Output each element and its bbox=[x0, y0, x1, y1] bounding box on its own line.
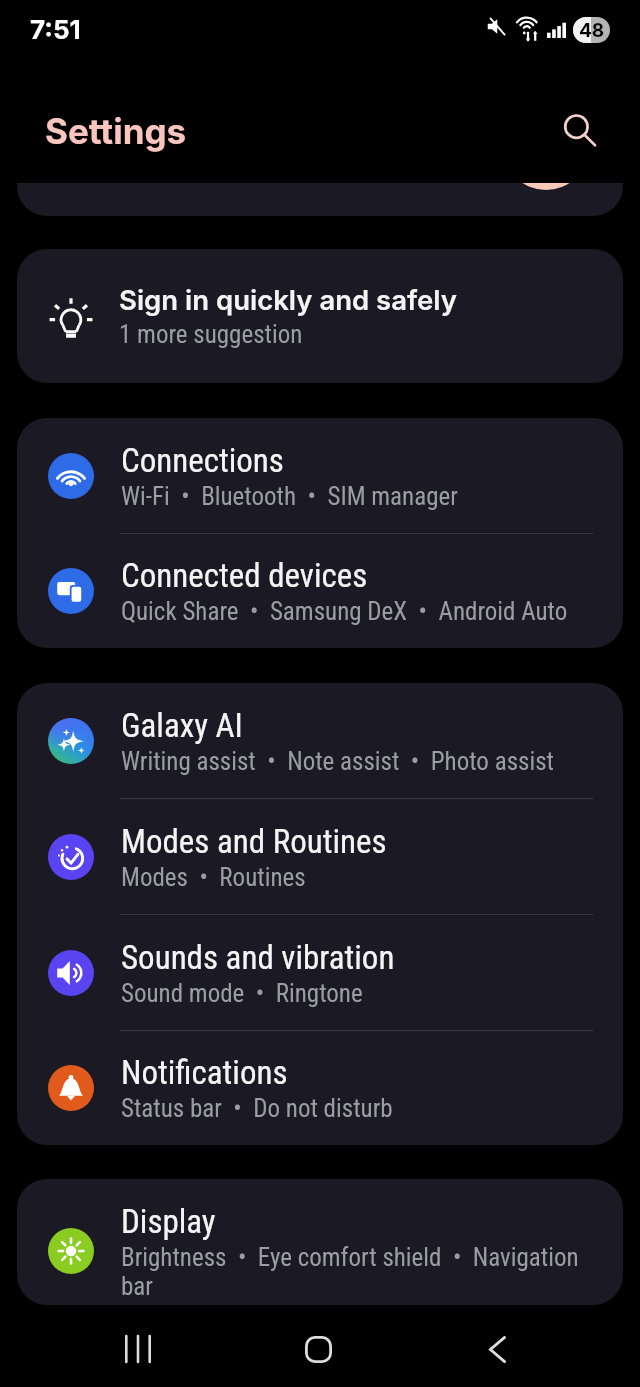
staticText: Connections bbox=[121, 441, 284, 480]
button[interactable]: Modes and Routines bbox=[17, 799, 623, 914]
staticText: Wi-Fi • Bluetooth • SIM manager bbox=[121, 482, 458, 511]
staticText: Status bar • Do not disturb bbox=[121, 1094, 393, 1123]
staticText: Sign in quickly and safely bbox=[119, 283, 457, 316]
staticText: Settings bbox=[45, 110, 187, 152]
staticText: 1 more suggestion bbox=[119, 320, 303, 349]
button[interactable]: Display bbox=[17, 1179, 623, 1305]
button[interactable]: Galaxy AI bbox=[17, 683, 623, 798]
staticText: Notifications bbox=[121, 1053, 288, 1092]
button[interactable]: Connected devices bbox=[17, 534, 623, 648]
staticText: 7:51 bbox=[30, 14, 81, 45]
staticText: Modes • Routines bbox=[121, 863, 306, 892]
button[interactable]: Recent apps bbox=[110, 1321, 166, 1377]
button[interactable]: Connections bbox=[17, 418, 623, 533]
staticText: Sounds and vibration bbox=[121, 938, 395, 977]
staticText: Galaxy AI bbox=[121, 706, 243, 745]
button[interactable]: Home bbox=[290, 1321, 346, 1377]
button[interactable]: Sign in quickly and safely bbox=[17, 249, 623, 383]
button[interactable]: Search bbox=[553, 104, 607, 158]
button[interactable] bbox=[17, 183, 623, 216]
button[interactable]: Notifications bbox=[17, 1031, 623, 1145]
staticText: Display bbox=[121, 1202, 216, 1241]
button[interactable]: Back bbox=[469, 1321, 525, 1377]
staticText: Connected devices bbox=[121, 556, 368, 595]
button[interactable]: Sounds and vibration bbox=[17, 915, 623, 1030]
staticText: Writing assist • Note assist • Photo ass… bbox=[121, 747, 554, 776]
staticText: 48 bbox=[579, 19, 605, 42]
staticText: Modes and Routines bbox=[121, 822, 387, 861]
staticText: Brightness • Eye comfort shield • Naviga… bbox=[121, 1243, 595, 1301]
staticText: Quick Share • Samsung DeX • Android Auto bbox=[121, 597, 568, 626]
staticText: Sound mode • Ringtone bbox=[121, 979, 363, 1008]
